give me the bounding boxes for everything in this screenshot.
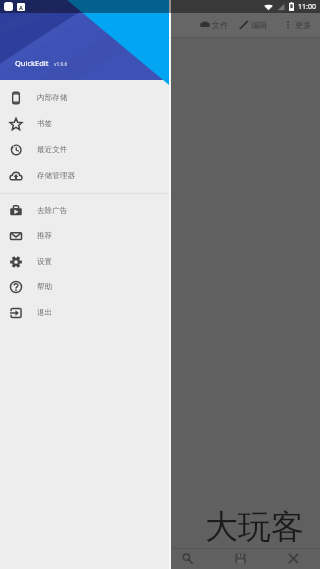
staticText: v1.9.6 [54,61,68,68]
staticText: 大玩客 [205,506,304,548]
button[interactable]: 设置 [0,249,169,275]
button[interactable]: 推荐 [0,223,169,249]
button[interactable]: 最近文件 [0,137,169,163]
staticText: 文件 [212,20,229,30]
staticText: 去除广告 [37,206,68,216]
staticText: 内部存储 [37,93,68,103]
staticText: 编辑 [251,20,268,30]
staticText: 设置 [37,257,53,267]
button[interactable]: 更多 [282,13,313,37]
staticText: QuickEdit [15,58,49,68]
button[interactable]: 存储管理器 [0,163,169,189]
button[interactable]: 去除广告 [0,198,169,224]
staticText: 11:00 [298,2,316,12]
staticText: 存储管理器 [37,171,75,181]
staticText: 更多 [295,20,312,30]
staticText: 最近文件 [37,145,68,155]
button[interactable]: Save [214,548,267,569]
button[interactable]: Search [161,548,214,569]
staticText: 书签 [37,119,53,129]
button[interactable]: 书签 [0,111,169,137]
staticText: 帮助 [37,282,53,292]
staticText: 推荐 [37,231,53,241]
button[interactable]: 帮助 [0,274,169,300]
button[interactable]: 文件 [199,13,230,37]
button[interactable]: Close [267,548,320,569]
button[interactable]: 退出 [0,300,169,326]
button[interactable]: 内部存储 [0,85,169,111]
staticText: 退出 [37,308,53,318]
button[interactable]: 编辑 [238,13,269,37]
staticText: A [19,4,23,11]
